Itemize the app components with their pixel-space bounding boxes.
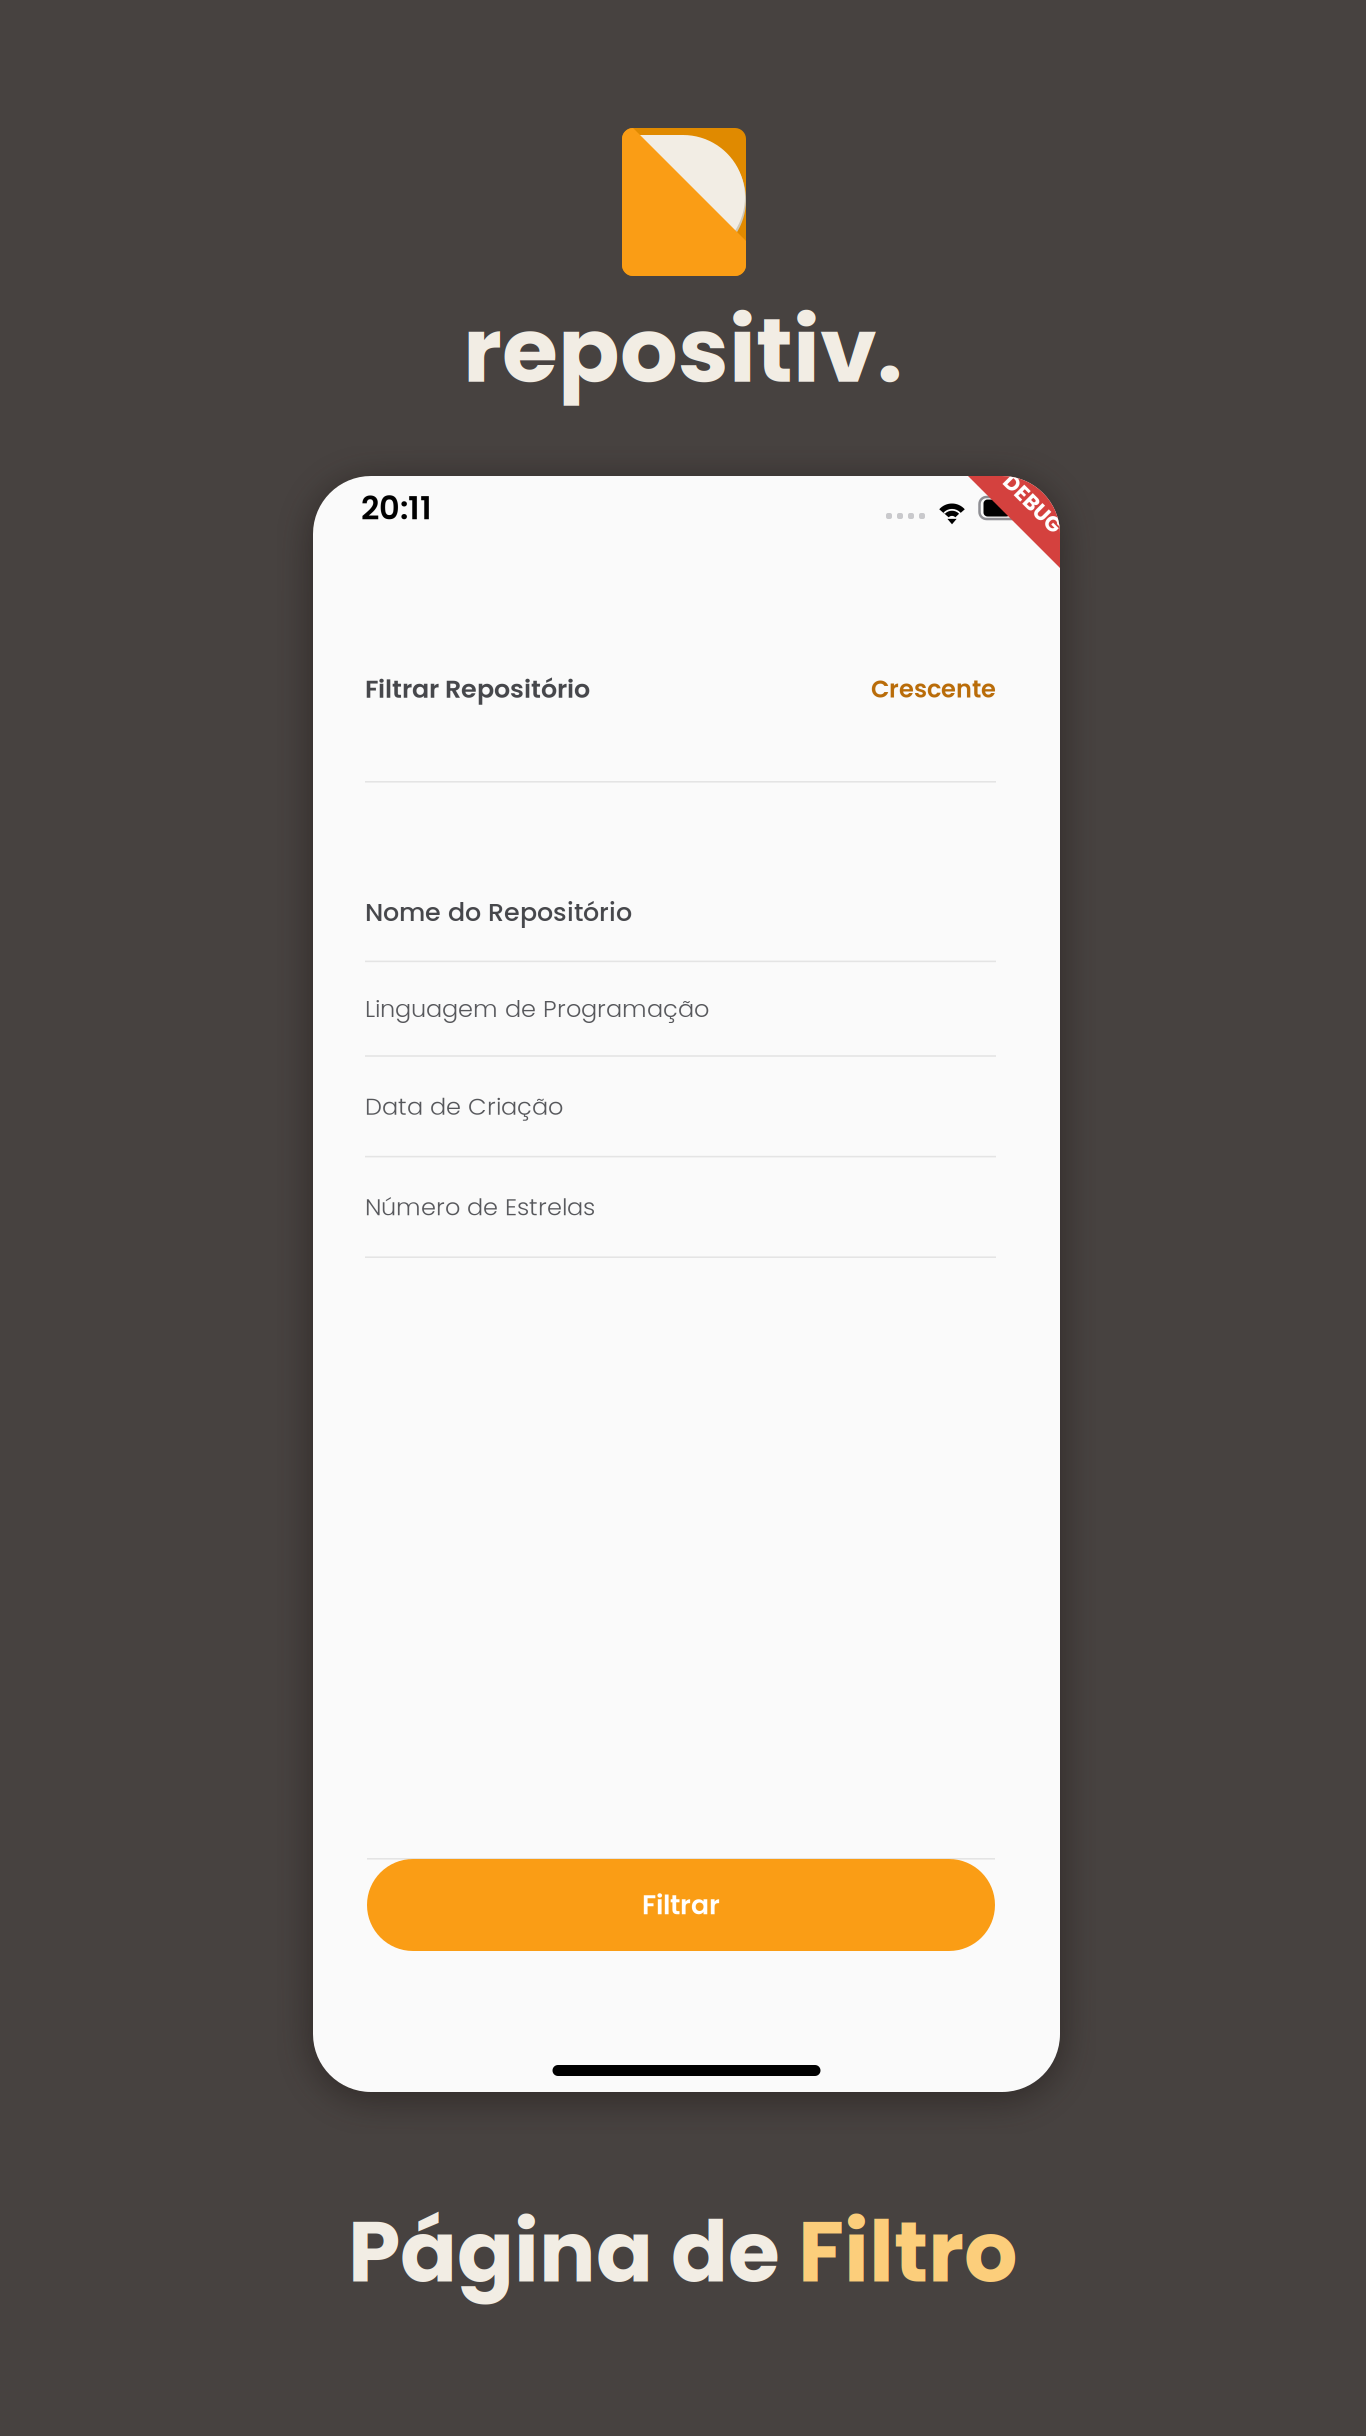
button[interactable]: Filtrar xyxy=(367,1859,995,1951)
staticText: Data de Criação xyxy=(365,1089,563,1123)
staticText: Página de xyxy=(348,2193,798,2311)
staticText: 20:11 xyxy=(361,486,432,530)
staticText: repositiv. xyxy=(463,286,903,413)
staticText: DEBUG xyxy=(996,489,1069,518)
staticText: Número de Estrelas xyxy=(365,1190,595,1224)
button[interactable]: Número de Estrelas xyxy=(365,1157,996,1258)
staticText: Filtrar xyxy=(642,1886,720,1924)
staticText: Filtrar Repositório xyxy=(365,671,590,707)
staticText: Linguagem de Programação xyxy=(365,992,709,1025)
button[interactable]: Nome do Repositório xyxy=(365,864,996,962)
staticText: Crescente xyxy=(871,672,996,706)
button[interactable]: Linguagem de Programação xyxy=(365,962,996,1057)
staticText: Nome do Repositório xyxy=(365,894,632,930)
staticText: Filtro xyxy=(798,2193,1018,2311)
button[interactable]: Crescente xyxy=(871,672,996,706)
button[interactable]: Data de Criação xyxy=(365,1057,996,1157)
